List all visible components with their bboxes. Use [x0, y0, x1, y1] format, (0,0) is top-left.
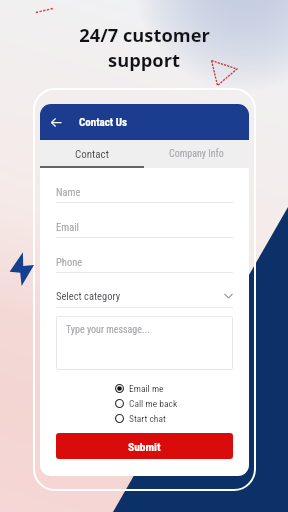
staticText: Submit: [128, 440, 161, 453]
button[interactable]: Email me: [115, 381, 199, 396]
staticText: Type your message...: [66, 324, 150, 336]
button[interactable]: Start chat: [115, 411, 199, 426]
button[interactable]: Submit: [56, 433, 233, 459]
staticText: Contact: [75, 148, 109, 161]
button[interactable]: Back: [46, 112, 66, 132]
staticText: Contact Us: [79, 116, 127, 129]
staticText: Email me: [129, 383, 164, 394]
button[interactable]: Call me back: [115, 396, 199, 411]
staticText: Company Info: [169, 148, 224, 160]
staticText: Name: [56, 186, 81, 198]
staticText: Email: [56, 221, 79, 233]
staticText: Phone: [56, 256, 83, 268]
button[interactable]: Select category: [56, 290, 233, 302]
staticText: 24/7 customer: [79, 22, 210, 47]
staticText: Select category: [56, 290, 224, 302]
staticText: support: [108, 47, 180, 72]
staticText: Start chat: [129, 413, 166, 424]
button[interactable]: Type your message...: [56, 316, 233, 370]
button[interactable]: Contact: [40, 140, 144, 168]
staticText: Call me back: [129, 398, 178, 409]
button[interactable]: Company Info: [144, 140, 249, 168]
